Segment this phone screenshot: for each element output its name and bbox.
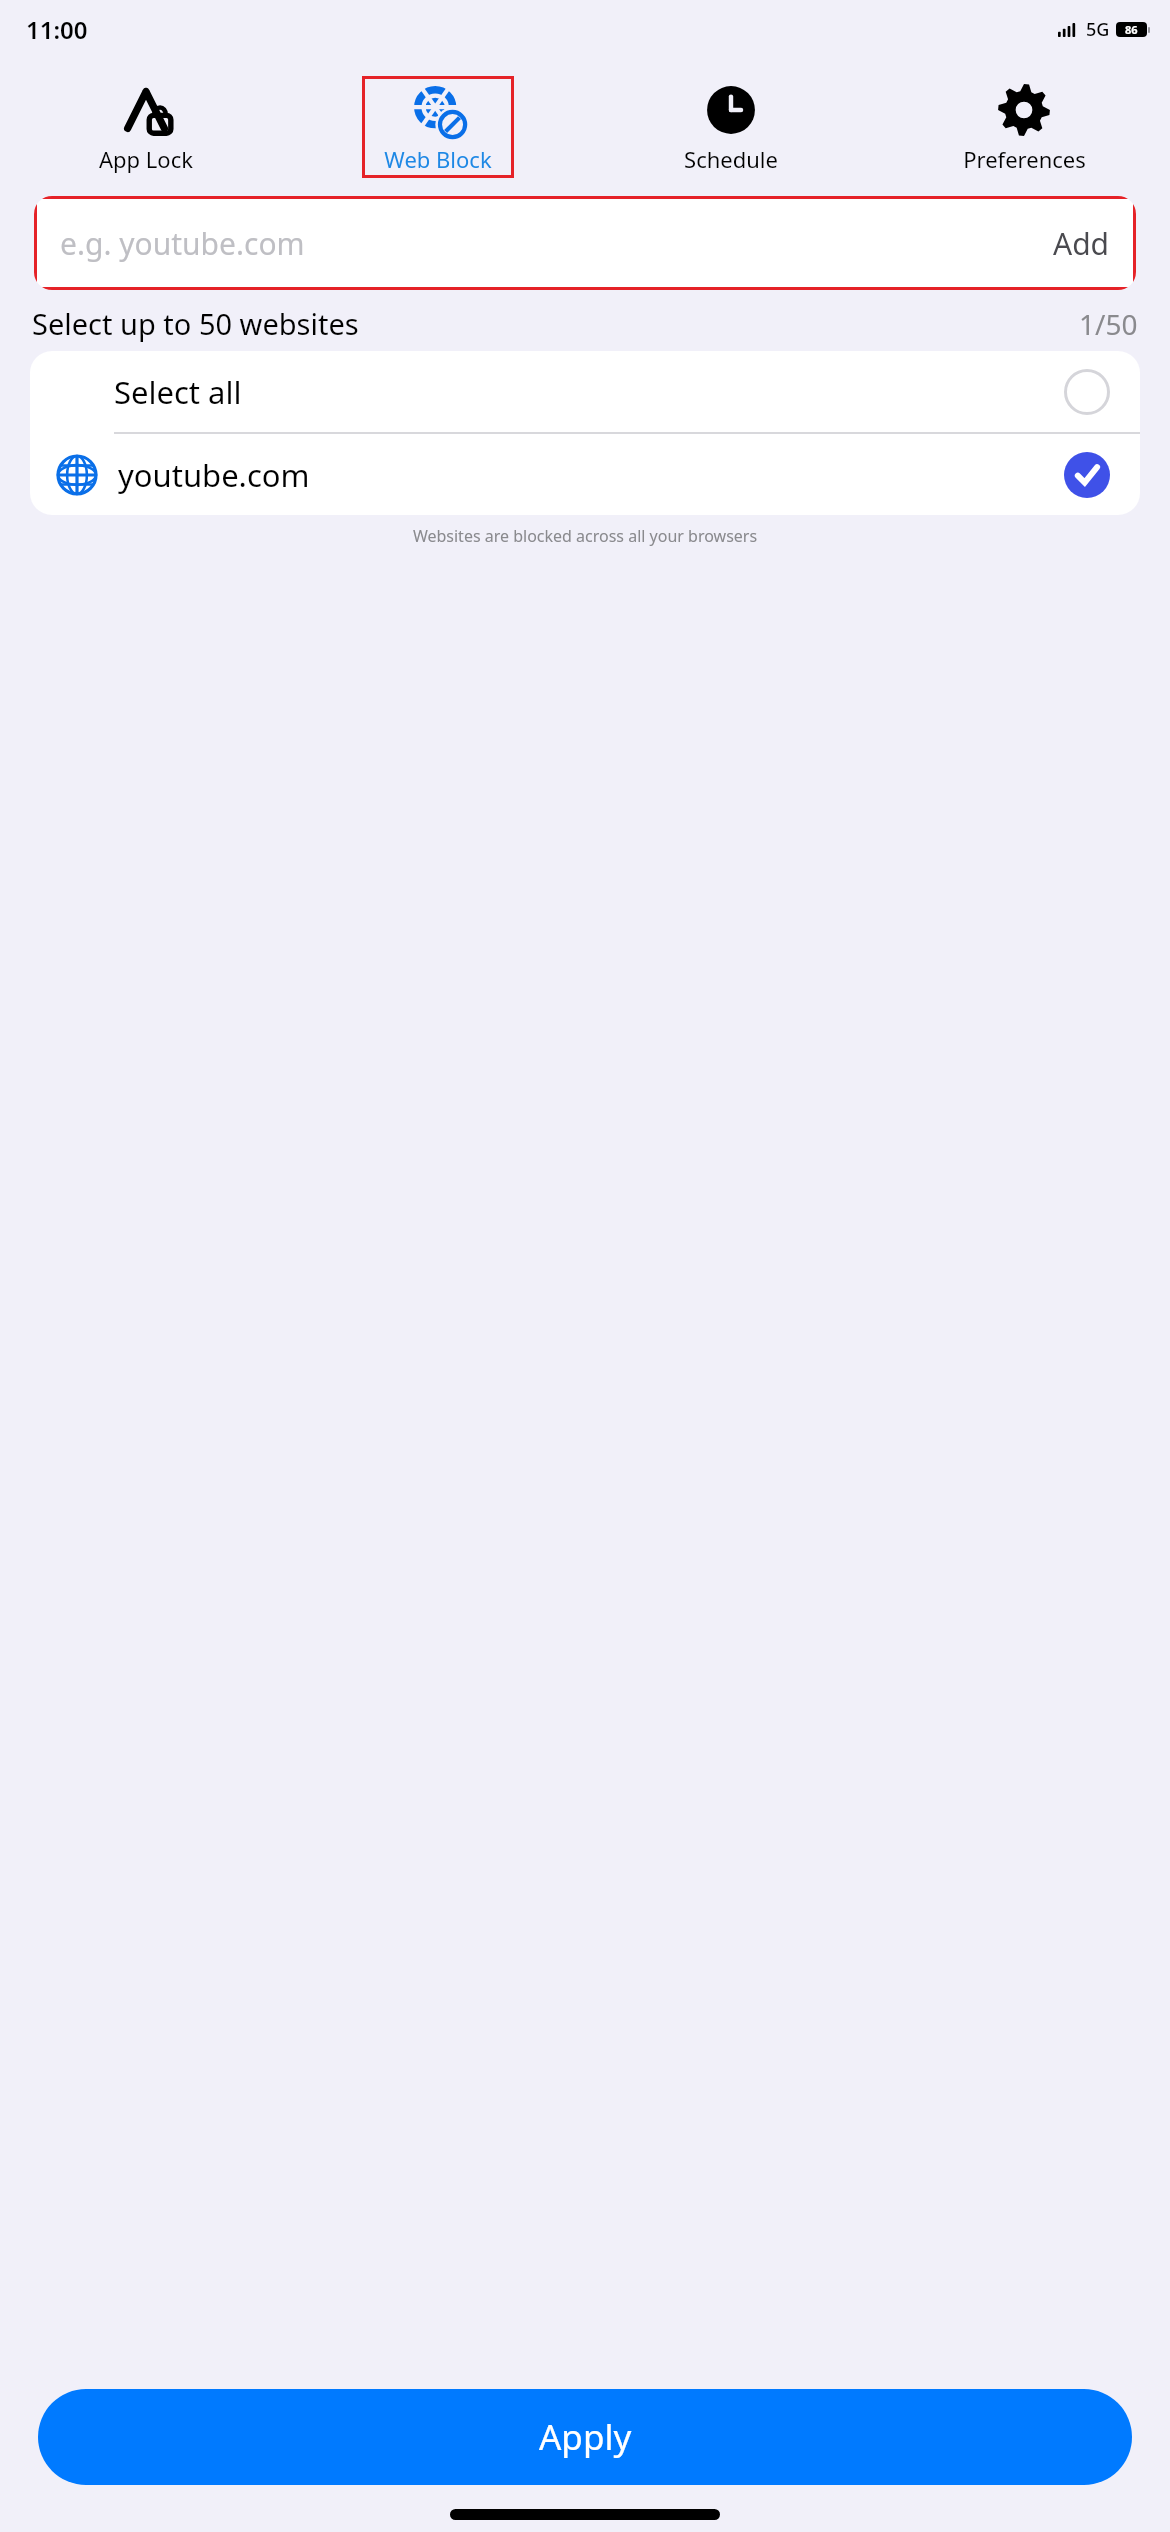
staticText: Preferences <box>963 144 1086 174</box>
staticText: Select all <box>114 371 242 413</box>
staticText: 11:00 <box>26 13 88 46</box>
staticText: Web Block <box>384 144 492 174</box>
button[interactable]: Apply <box>38 2389 1132 2485</box>
staticText: Schedule <box>684 144 778 174</box>
staticText: 1/50 <box>1079 305 1138 343</box>
staticText: e.g. youtube.com <box>60 223 305 264</box>
button[interactable]: Web Block <box>362 76 514 178</box>
staticText: Add <box>1053 223 1110 264</box>
button[interactable]: App Lock <box>70 76 222 178</box>
button[interactable]: Schedule <box>655 76 807 178</box>
staticText: Select up to 50 websites <box>32 304 359 343</box>
staticText: 86 <box>1125 22 1138 37</box>
button[interactable]: youtube.com <box>30 434 1140 515</box>
staticText: Apply <box>539 2413 632 2461</box>
staticText: App Lock <box>99 144 193 174</box>
staticText: 5G <box>1086 17 1110 42</box>
button[interactable]: Preferences <box>948 76 1100 178</box>
button[interactable]: e.g. youtube.com <box>34 196 1136 290</box>
staticText: Websites are blocked across all your bro… <box>0 525 1170 547</box>
staticText: youtube.com <box>118 454 310 496</box>
button[interactable]: Select all <box>30 351 1140 432</box>
